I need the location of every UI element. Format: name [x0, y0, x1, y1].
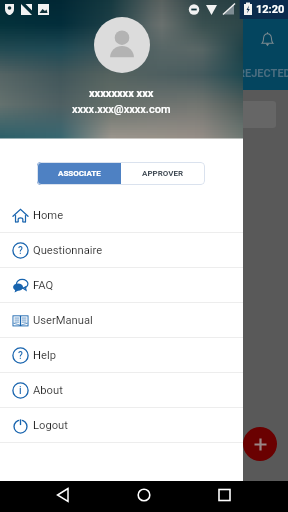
staticText: About: [33, 384, 63, 397]
staticText: Help: [33, 349, 56, 362]
button[interactable]: APPROVER: [121, 162, 205, 185]
staticText: ASSOCIATE: [58, 169, 101, 178]
staticText: FAQ: [33, 279, 54, 292]
staticText: xxxxxxxx xxx: [89, 87, 154, 100]
button[interactable]: Notifications: [256, 28, 278, 50]
button[interactable]: ?: [0, 338, 243, 372]
staticText: Questionnaire: [33, 244, 103, 257]
staticText: i: [19, 385, 22, 397]
button[interactable]: UserManual: [0, 303, 243, 337]
button[interactable]: Add: [243, 427, 277, 461]
staticText: ?: [18, 245, 23, 257]
button[interactable]: Home: [0, 198, 243, 232]
staticText: APPROVER: [142, 169, 184, 178]
staticText: xxxx.xxx@xxxx.com: [72, 103, 171, 116]
staticText: 12:20: [256, 3, 285, 16]
button[interactable]: ?: [0, 233, 243, 267]
staticText: Home: [33, 209, 64, 222]
staticText: REJECTED: [238, 67, 288, 80]
staticText: ?: [18, 350, 23, 362]
staticText: Logout: [33, 419, 68, 432]
button[interactable]: Logout: [0, 408, 243, 442]
button[interactable]: i: [0, 373, 243, 407]
button[interactable]: ASSOCIATE: [37, 162, 121, 185]
button[interactable]: FAQ: [0, 268, 243, 302]
staticText: UserManual: [33, 314, 93, 327]
